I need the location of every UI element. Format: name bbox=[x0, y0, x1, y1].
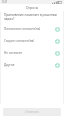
staticText: Не согласен bbox=[4, 51, 53, 55]
button[interactable]: Скорее согласен(на) bbox=[1, 35, 63, 47]
staticText: Опросы bbox=[26, 6, 39, 10]
button[interactable]: Не согласен bbox=[1, 47, 63, 59]
staticText: Полностью согласен(на) bbox=[4, 27, 53, 31]
other: Select answer bbox=[55, 51, 60, 56]
other: Select answer bbox=[55, 39, 60, 44]
staticText: Ответить bbox=[25, 110, 39, 114]
other: Select answer bbox=[55, 63, 60, 68]
staticText: Другое bbox=[4, 63, 53, 67]
staticText: Скорее согласен(на) bbox=[4, 39, 53, 43]
button[interactable]: Ответить bbox=[3, 108, 61, 116]
button[interactable]: Опросы bbox=[24, 5, 41, 11]
staticText: Приложение помогает в решении задач? bbox=[4, 13, 60, 21]
staticText: 9:41 bbox=[2, 0, 8, 4]
button[interactable]: Полностью согласен(на) bbox=[1, 23, 63, 35]
other: Select answer bbox=[55, 27, 60, 32]
button[interactable]: Другое bbox=[1, 59, 63, 71]
